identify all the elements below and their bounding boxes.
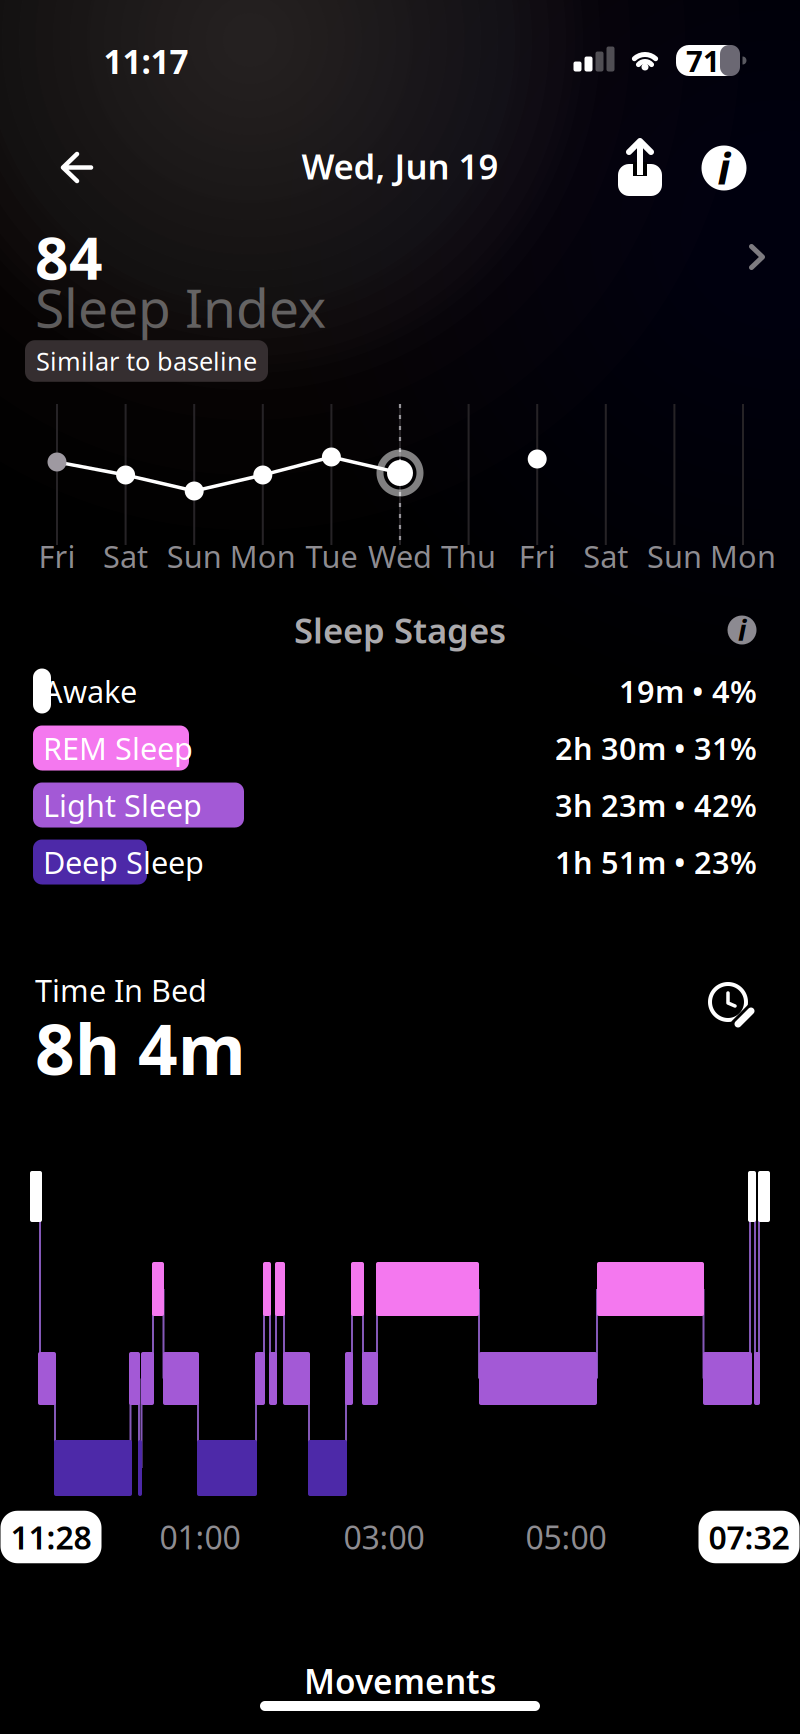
button[interactable]: Sleep stages info bbox=[727, 615, 756, 644]
staticText: i bbox=[738, 611, 746, 649]
button[interactable]: Details bbox=[748, 243, 765, 270]
staticText: 11:17 bbox=[103, 39, 188, 83]
staticText: Fri bbox=[519, 536, 556, 576]
staticText: Similar to baseline bbox=[36, 344, 257, 378]
staticText: Mon bbox=[230, 536, 296, 576]
staticText: 03:00 bbox=[343, 1516, 424, 1558]
button[interactable]: Info bbox=[701, 145, 746, 190]
staticText: Light Sleep bbox=[43, 785, 202, 825]
staticText: i bbox=[717, 140, 730, 196]
staticText: 84 bbox=[35, 218, 103, 296]
staticText: 3h 23m • 42% bbox=[555, 785, 757, 825]
staticText: Sleep Index bbox=[35, 272, 326, 342]
staticText: 01:00 bbox=[159, 1516, 240, 1558]
staticText: Tue bbox=[305, 536, 357, 576]
staticText: Sleep Stages bbox=[294, 607, 506, 653]
staticText: Awake bbox=[43, 671, 137, 711]
staticText: Sun bbox=[647, 536, 702, 576]
staticText: Sat bbox=[103, 536, 148, 576]
staticText: 1h 51m • 23% bbox=[555, 842, 757, 882]
staticText: Wed bbox=[368, 536, 432, 576]
staticText: Movements bbox=[304, 1659, 496, 1703]
staticText: 11:28 bbox=[10, 1516, 91, 1558]
staticText: 19m • 4% bbox=[619, 671, 757, 711]
staticText: 05:00 bbox=[525, 1516, 606, 1558]
staticText: Thu bbox=[441, 536, 496, 576]
staticText: Sun bbox=[167, 536, 222, 576]
staticText: 2h 30m • 31% bbox=[555, 728, 757, 768]
staticText: Fri bbox=[38, 536, 75, 576]
staticText: Time In Bed bbox=[35, 970, 207, 1010]
button[interactable]: Edit time in bed bbox=[709, 981, 757, 1029]
button[interactable]: Share bbox=[614, 138, 666, 198]
staticText: Sat bbox=[583, 536, 628, 576]
staticText: REM Sleep bbox=[43, 728, 193, 768]
staticText: Wed, Jun 19 bbox=[301, 143, 498, 189]
staticText: 07:32 bbox=[708, 1516, 789, 1558]
staticText: 8h 4m bbox=[35, 1002, 246, 1094]
staticText: Deep Sleep bbox=[43, 842, 204, 882]
staticText: Mon bbox=[710, 536, 776, 576]
staticText: 71 bbox=[686, 41, 720, 80]
button[interactable]: Back bbox=[51, 151, 95, 185]
